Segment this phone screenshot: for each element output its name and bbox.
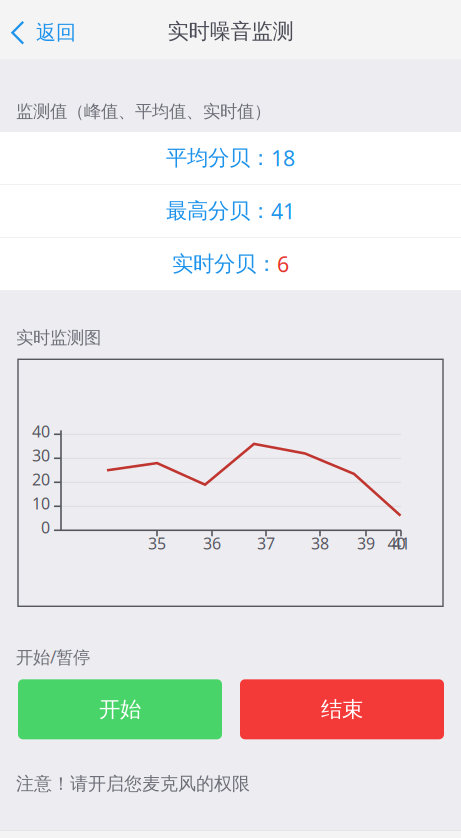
button[interactable]: 最高分贝： (0, 185, 461, 237)
staticText: 平均分贝： (166, 145, 271, 171)
staticText: 41 (271, 197, 295, 225)
button[interactable]: 开始 (18, 679, 222, 739)
staticText: 开始/暂停 (16, 645, 90, 668)
staticText: 40 (32, 421, 50, 442)
staticText: 结束 (321, 696, 363, 722)
button[interactable]: 返回 (0, 0, 88, 59)
staticText: 返回 (36, 20, 76, 45)
button[interactable]: 实时分贝： (0, 238, 461, 290)
staticText: 监测值（峰值、平均值、实时值） (16, 101, 271, 122)
staticText: 35 (148, 533, 166, 554)
staticText: 实时监测图 (16, 327, 101, 348)
staticText: 40 (387, 533, 405, 554)
staticText: 0 (41, 517, 50, 538)
staticText: 实时噪音监测 (167, 18, 293, 45)
staticText: 20 (32, 469, 50, 490)
staticText: 41 (392, 533, 410, 554)
staticText: 37 (257, 533, 275, 554)
staticText: 最高分贝： (166, 198, 271, 224)
staticText: 39 (357, 533, 375, 554)
button[interactable]: 结束 (240, 679, 444, 739)
button[interactable]: 平均分贝： (0, 132, 461, 184)
staticText: 6 (277, 250, 289, 278)
staticText: 注意！请开启您麦克风的权限 (16, 772, 250, 795)
staticText: 36 (203, 533, 221, 554)
staticText: 18 (271, 144, 295, 172)
staticText: 38 (311, 533, 329, 554)
staticText: 30 (32, 445, 50, 466)
staticText: 开始 (99, 696, 141, 722)
staticText: 实时分贝： (172, 251, 277, 277)
staticText: 10 (32, 493, 50, 514)
